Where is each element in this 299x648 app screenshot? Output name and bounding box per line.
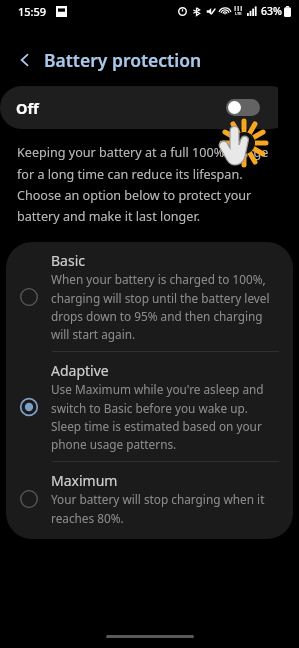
button[interactable]: Off xyxy=(0,86,278,129)
staticText: Off xyxy=(16,98,39,118)
button[interactable]: Basic xyxy=(6,242,293,351)
staticText: 15:59 xyxy=(18,4,47,19)
staticText: Use Maximum while you're asleep and swit… xyxy=(51,381,281,452)
staticText: Basic xyxy=(51,251,85,270)
button[interactable]: Back xyxy=(0,42,299,78)
button[interactable]: Maximum xyxy=(6,462,293,539)
staticText: Your battery will stop charging when it … xyxy=(51,491,281,526)
button[interactable]: Adaptive xyxy=(6,352,293,461)
staticText: When your battery is charged to 100%, ch… xyxy=(51,271,281,342)
staticText: LTE xyxy=(235,11,242,16)
staticText: Adaptive xyxy=(51,361,109,380)
staticText: Keeping your battery at a full 100% char… xyxy=(17,144,279,225)
staticText: Battery protection xyxy=(44,48,202,72)
staticText: Maximum xyxy=(51,471,118,490)
staticText: 63% xyxy=(261,4,282,18)
